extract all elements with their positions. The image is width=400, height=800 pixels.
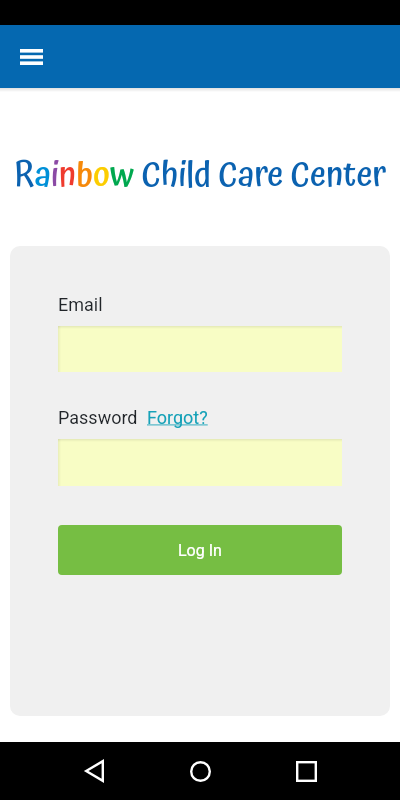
button[interactable]: Forgot? — [147, 407, 208, 428]
button[interactable]: Log In — [58, 525, 342, 575]
button[interactable]: Home — [178, 749, 222, 793]
button[interactable]: Back — [72, 749, 116, 793]
staticText: Email — [58, 294, 103, 315]
staticText: Rainbow Child Care Center — [14, 147, 387, 204]
button[interactable]: Recent apps — [284, 749, 328, 793]
staticText: Forgot? — [147, 407, 208, 428]
button[interactable]: Email input — [58, 326, 342, 372]
button[interactable]: Open navigation menu — [9, 35, 53, 79]
staticText: Password — [58, 407, 138, 428]
staticText: Log In — [178, 541, 222, 560]
